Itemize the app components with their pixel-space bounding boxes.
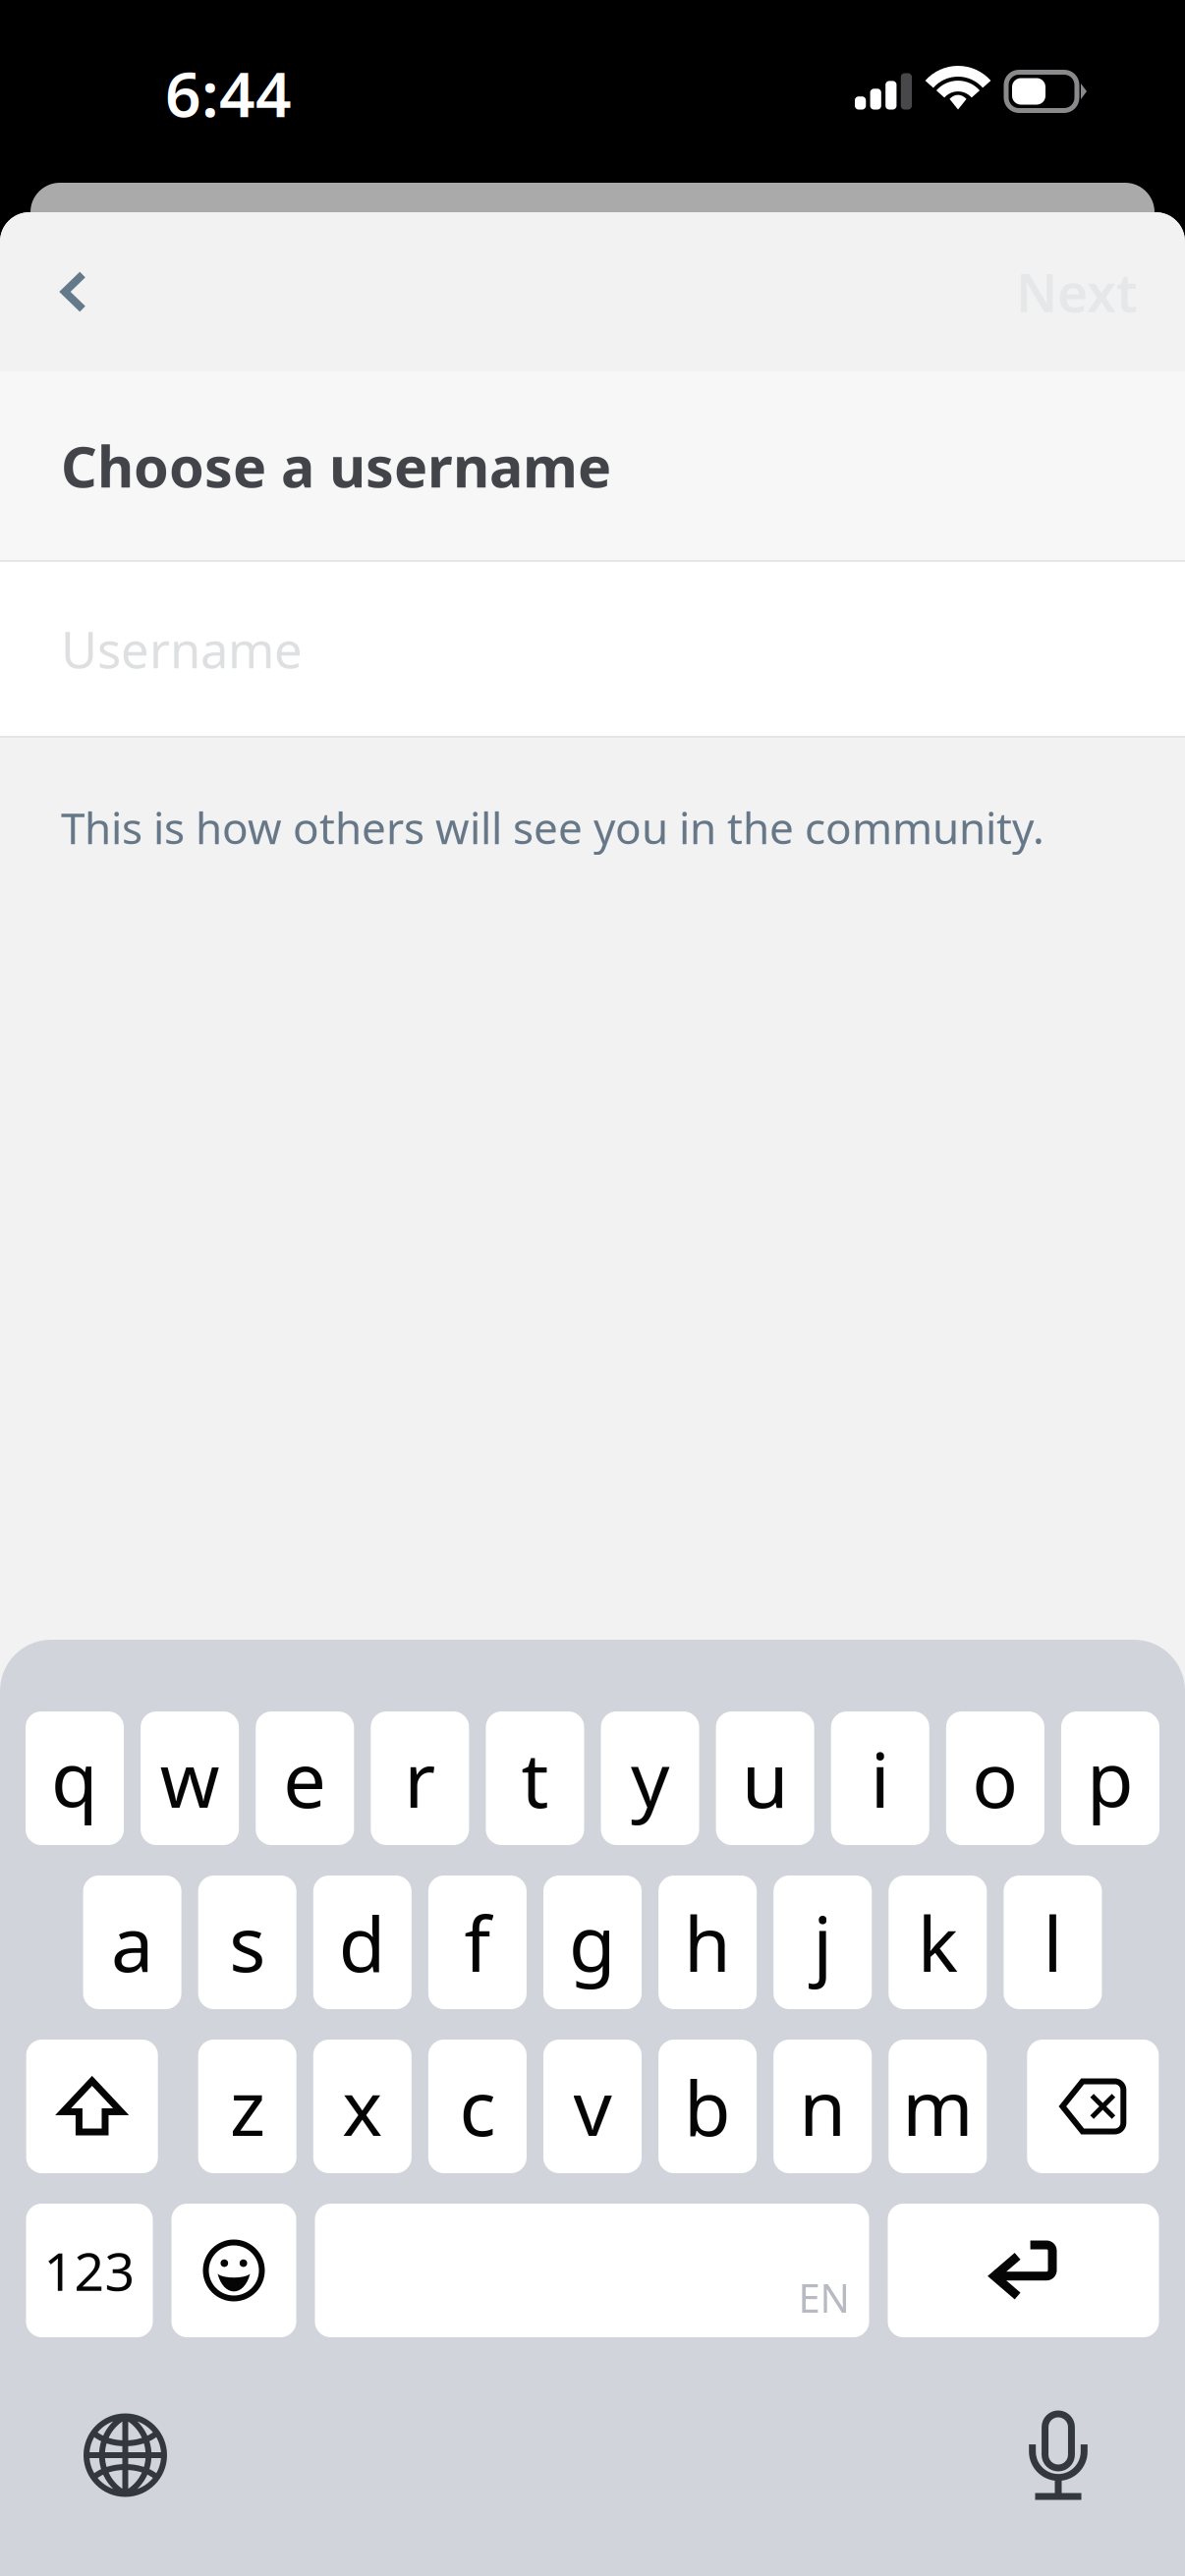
button[interactable]: l: [1004, 1876, 1102, 2009]
staticText: 123: [44, 2236, 135, 2305]
staticText: r: [404, 1728, 436, 1829]
button[interactable]: e: [256, 1711, 354, 1845]
button[interactable]: Return: [888, 2204, 1159, 2337]
button[interactable]: o: [946, 1711, 1044, 1845]
button[interactable]: a: [83, 1876, 181, 2009]
staticText: n: [799, 2056, 846, 2157]
button[interactable]: k: [889, 1876, 987, 2009]
staticText: Username: [61, 616, 303, 682]
staticText: b: [684, 2056, 731, 2157]
button[interactable]: c: [428, 2040, 527, 2173]
button[interactable]: Next keyboard: [67, 2397, 184, 2514]
staticText: u: [741, 1728, 789, 1829]
staticText: EN: [798, 2271, 849, 2324]
staticText: e: [283, 1728, 326, 1829]
staticText: Choose a username: [61, 428, 611, 503]
staticText: z: [230, 2056, 265, 2157]
button[interactable]: j: [773, 1876, 872, 2009]
button[interactable]: x: [313, 2040, 412, 2173]
button[interactable]: h: [658, 1876, 757, 2009]
staticText: s: [229, 1892, 265, 1993]
staticText: x: [342, 2056, 383, 2157]
staticText: m: [902, 2056, 973, 2157]
staticText: f: [464, 1892, 491, 1993]
staticText: y: [631, 1728, 669, 1829]
staticText: h: [684, 1892, 731, 1993]
staticText: t: [521, 1728, 549, 1829]
button[interactable]: s: [198, 1876, 296, 2009]
button[interactable]: g: [543, 1876, 642, 2009]
button[interactable]: z: [198, 2040, 296, 2173]
staticText: j: [813, 1892, 832, 1993]
staticText: w: [160, 1728, 220, 1829]
button[interactable]: y: [601, 1711, 699, 1845]
staticText: d: [339, 1892, 386, 1993]
staticText: a: [111, 1892, 153, 1993]
staticText: q: [51, 1728, 98, 1829]
button[interactable]: Dictate: [1011, 2394, 1105, 2516]
staticText: This is how others will see you in the c…: [61, 799, 1044, 856]
button[interactable]: q: [26, 1711, 124, 1845]
button[interactable]: m: [889, 2040, 987, 2173]
button[interactable]: 123: [26, 2204, 153, 2337]
button[interactable]: Next: [977, 218, 1185, 366]
button[interactable]: w: [141, 1711, 239, 1845]
button[interactable]: Shift: [26, 2040, 158, 2173]
staticText: l: [1043, 1892, 1063, 1993]
button[interactable]: space: [315, 2204, 869, 2337]
button[interactable]: v: [543, 2040, 642, 2173]
staticText: 6:44: [165, 51, 292, 135]
button[interactable]: Back: [0, 235, 132, 348]
button[interactable]: i: [831, 1711, 929, 1845]
button[interactable]: n: [773, 2040, 872, 2173]
staticText: v: [573, 2056, 612, 2157]
button[interactable]: b: [658, 2040, 757, 2173]
button[interactable]: Emoji: [171, 2204, 296, 2337]
button[interactable]: r: [371, 1711, 469, 1845]
button[interactable]: t: [486, 1711, 584, 1845]
button[interactable]: d: [313, 1876, 412, 2009]
button[interactable]: p: [1061, 1711, 1159, 1845]
staticText: Next: [1016, 257, 1138, 327]
button[interactable]: u: [716, 1711, 814, 1845]
staticText: k: [918, 1892, 958, 1993]
button[interactable]: Delete: [1027, 2040, 1159, 2173]
staticText: o: [972, 1728, 1018, 1829]
staticText: c: [459, 2056, 496, 2157]
staticText: p: [1087, 1728, 1134, 1829]
button[interactable]: f: [428, 1876, 527, 2009]
staticText: i: [870, 1728, 890, 1829]
staticText: g: [569, 1892, 616, 1993]
